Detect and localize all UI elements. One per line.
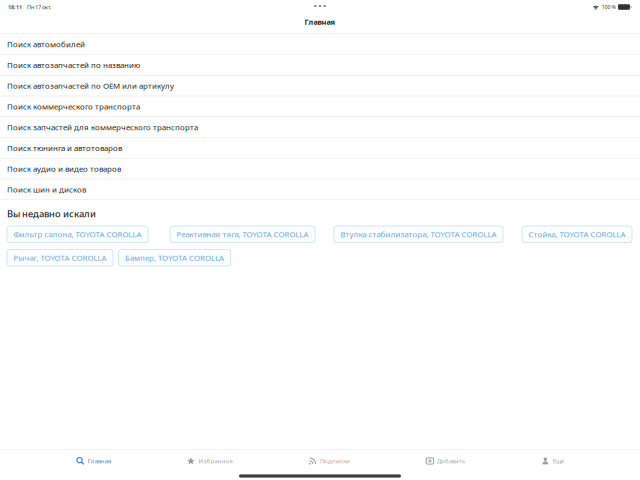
staticText: Втулка стабилизатора, TOYOTA COROLLA [340, 229, 496, 240]
button[interactable]: Поиск автозапчастей по OEM или артикулу [0, 75, 640, 96]
staticText: 18:11 [8, 3, 22, 11]
staticText: Ещё [553, 457, 564, 465]
staticText: Поиск автозапчастей по названию [7, 59, 140, 70]
button[interactable]: Стойка, TOYOTA COROLLA [522, 226, 632, 243]
button[interactable]: Реактивная тяга, TOYOTA COROLLA [170, 226, 315, 243]
staticText: Главная [88, 457, 111, 465]
button[interactable]: Фильтр салона, TOYOTA COROLLA [7, 226, 148, 243]
staticText: Главная [304, 17, 335, 27]
button[interactable]: Ещё [541, 450, 564, 472]
staticText: Поиск коммерческого транспорта [7, 101, 140, 112]
staticText: Фильтр салона, TOYOTA COROLLA [13, 229, 141, 240]
button[interactable]: Поиск коммерческого транспорта [0, 96, 640, 117]
staticText: Вы недавно искали [7, 207, 96, 220]
staticText: Избранное [198, 457, 232, 465]
button[interactable]: Втулка стабилизатора, TOYOTA COROLLA [334, 226, 503, 243]
button[interactable]: Поиск автомобилей [0, 34, 640, 55]
button[interactable]: Избранное [187, 450, 232, 472]
staticText: Подписки [320, 457, 350, 465]
staticText: Рычаг, TOYOTA COROLLA [13, 252, 106, 263]
staticText: Добавить [437, 457, 465, 465]
button[interactable]: Поиск аудио и видео товаров [0, 159, 640, 179]
staticText: Пн 17 окт. [27, 3, 52, 11]
staticText: 100 % [601, 3, 615, 11]
button[interactable]: Рычаг, TOYOTA COROLLA [7, 250, 113, 266]
staticText: Поиск автозапчастей по OEM или артикулу [7, 80, 174, 91]
button[interactable]: Поиск автозапчастей по названию [0, 55, 640, 76]
button[interactable]: Главная [76, 450, 111, 472]
staticText: Поиск тюнинга и автотоваров [7, 142, 122, 153]
staticText: Поиск аудио и видео товаров [7, 163, 121, 174]
staticText: Бампер, TOYOTA COROLLA [125, 252, 224, 263]
button[interactable]: Бампер, TOYOTA COROLLA [118, 250, 230, 266]
button[interactable]: Добавить [426, 450, 465, 472]
button[interactable]: Поиск запчастей для коммерческого трансп… [0, 117, 640, 138]
staticText: Стойка, TOYOTA COROLLA [528, 229, 625, 240]
staticText: Поиск запчастей для коммерческого трансп… [7, 122, 198, 132]
button[interactable]: Подписки [309, 450, 350, 472]
staticText: Реактивная тяга, TOYOTA COROLLA [176, 229, 308, 240]
staticText: Поиск автомобилей [7, 39, 85, 49]
button[interactable]: Поиск тюнинга и автотоваров [0, 138, 640, 159]
staticText: Поиск шин и дисков [7, 184, 86, 195]
button[interactable]: Поиск шин и дисков [0, 179, 640, 200]
